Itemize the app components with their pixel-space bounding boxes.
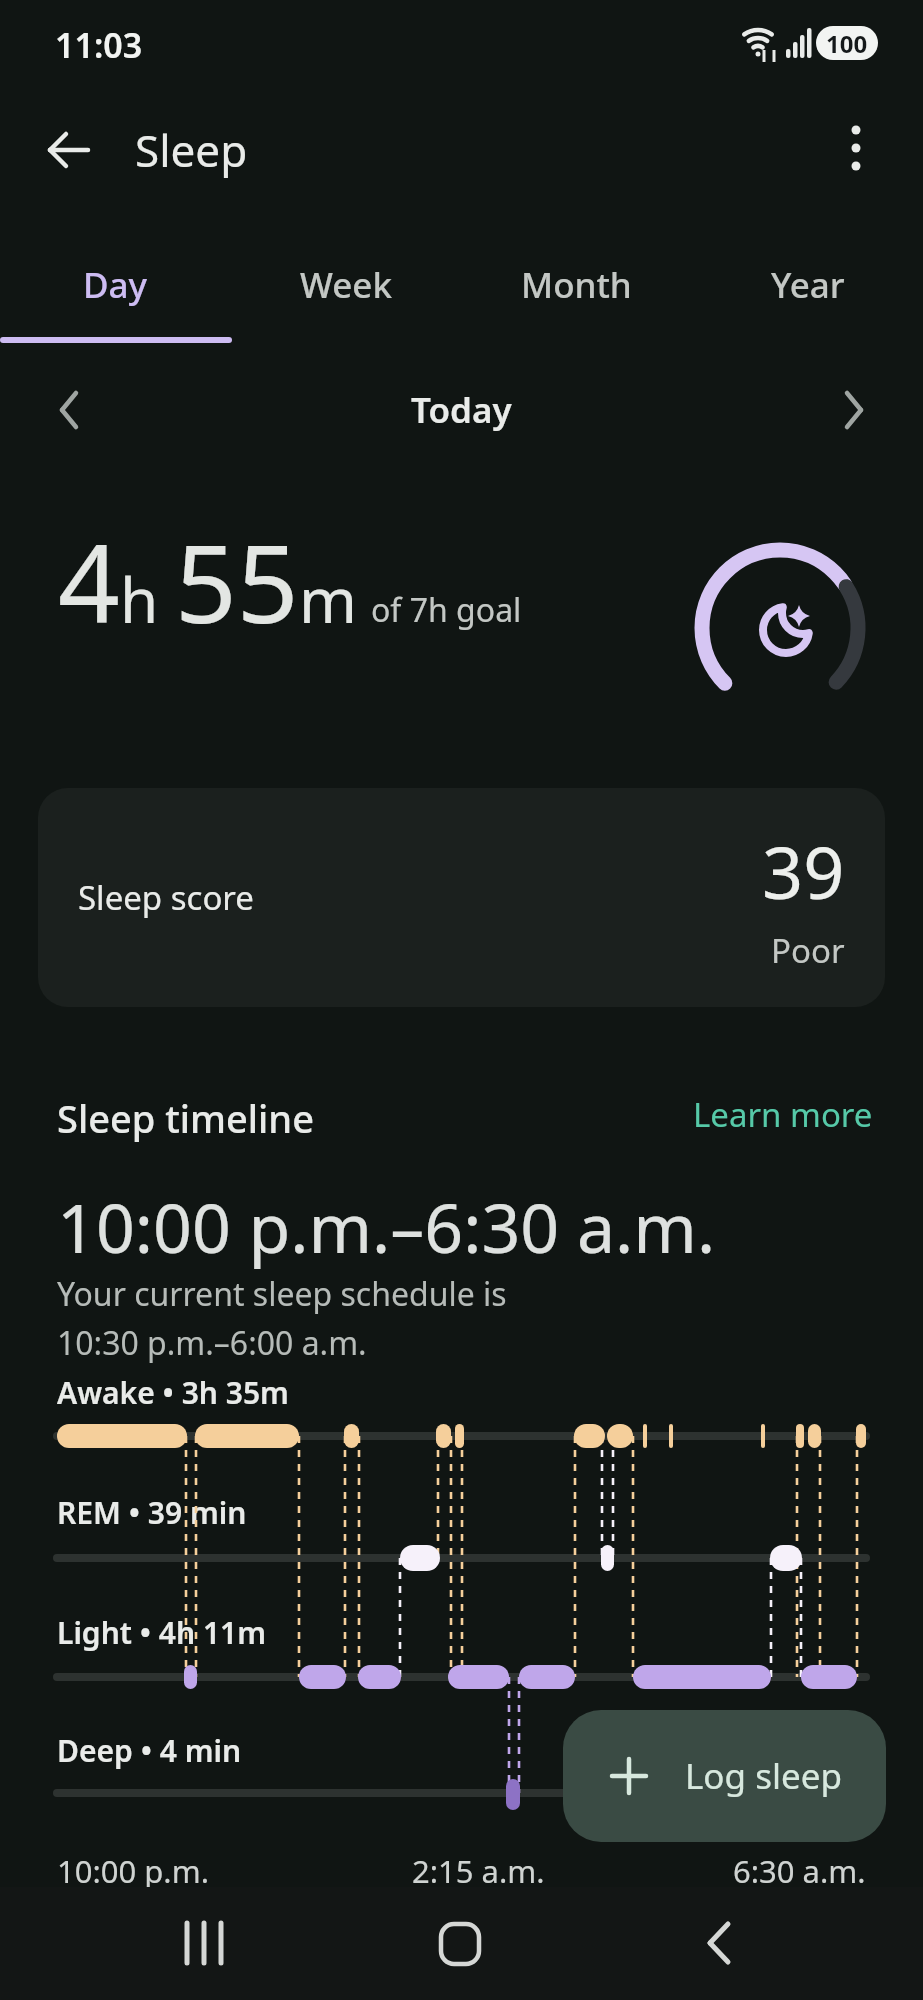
staticText: m (299, 557, 357, 641)
staticText: 6:30 a.m. (733, 1850, 866, 1892)
button[interactable] (680, 1907, 760, 1979)
staticText: 100 (826, 27, 868, 60)
button[interactable]: Year (692, 245, 923, 325)
staticText: 39 (762, 822, 845, 920)
button[interactable]: Month (461, 245, 692, 325)
staticText: 55 (175, 508, 299, 655)
button[interactable] (40, 375, 96, 445)
staticText: Your current sleep schedule is 10:30 p.m… (57, 1272, 507, 1365)
staticText: Deep • 4 min (57, 1730, 242, 1771)
button[interactable] (420, 1907, 500, 1979)
button[interactable] (830, 120, 882, 180)
staticText: 10:00 p.m.–6:30 a.m. (57, 1180, 716, 1273)
staticText: Week (300, 261, 392, 309)
staticText: Poor (771, 928, 845, 973)
staticText: Sleep timeline (57, 1092, 314, 1144)
button[interactable]: Day (0, 245, 230, 325)
button[interactable]: Log sleep (563, 1710, 886, 1842)
button[interactable] (827, 375, 883, 445)
button[interactable] (165, 1907, 245, 1979)
staticText: Sleep (135, 120, 248, 180)
staticText: Learn more (693, 1092, 873, 1137)
staticText: 4 (58, 508, 120, 655)
staticText: Light • 4h 11m (57, 1612, 267, 1653)
staticText: REM • 39 min (57, 1492, 247, 1533)
button[interactable] (40, 120, 100, 180)
staticText: Sleep score (78, 875, 254, 920)
staticText: 2:15 a.m. (412, 1850, 545, 1892)
staticText: Awake • 3h 35m (57, 1372, 289, 1413)
button[interactable]: Sleep score (38, 788, 885, 1007)
staticText: Log sleep (685, 1752, 842, 1800)
staticText: h (120, 557, 175, 641)
staticText: 10:00 p.m. (57, 1850, 209, 1892)
button[interactable]: Week (230, 245, 461, 325)
staticText: Day (83, 261, 148, 309)
staticText: 11:03 (55, 22, 143, 68)
staticText: Year (771, 261, 845, 309)
staticText: of 7h goal (371, 588, 522, 632)
staticText: Month (521, 261, 632, 309)
staticText: Today (411, 386, 512, 434)
button[interactable]: Learn more (693, 1092, 873, 1137)
